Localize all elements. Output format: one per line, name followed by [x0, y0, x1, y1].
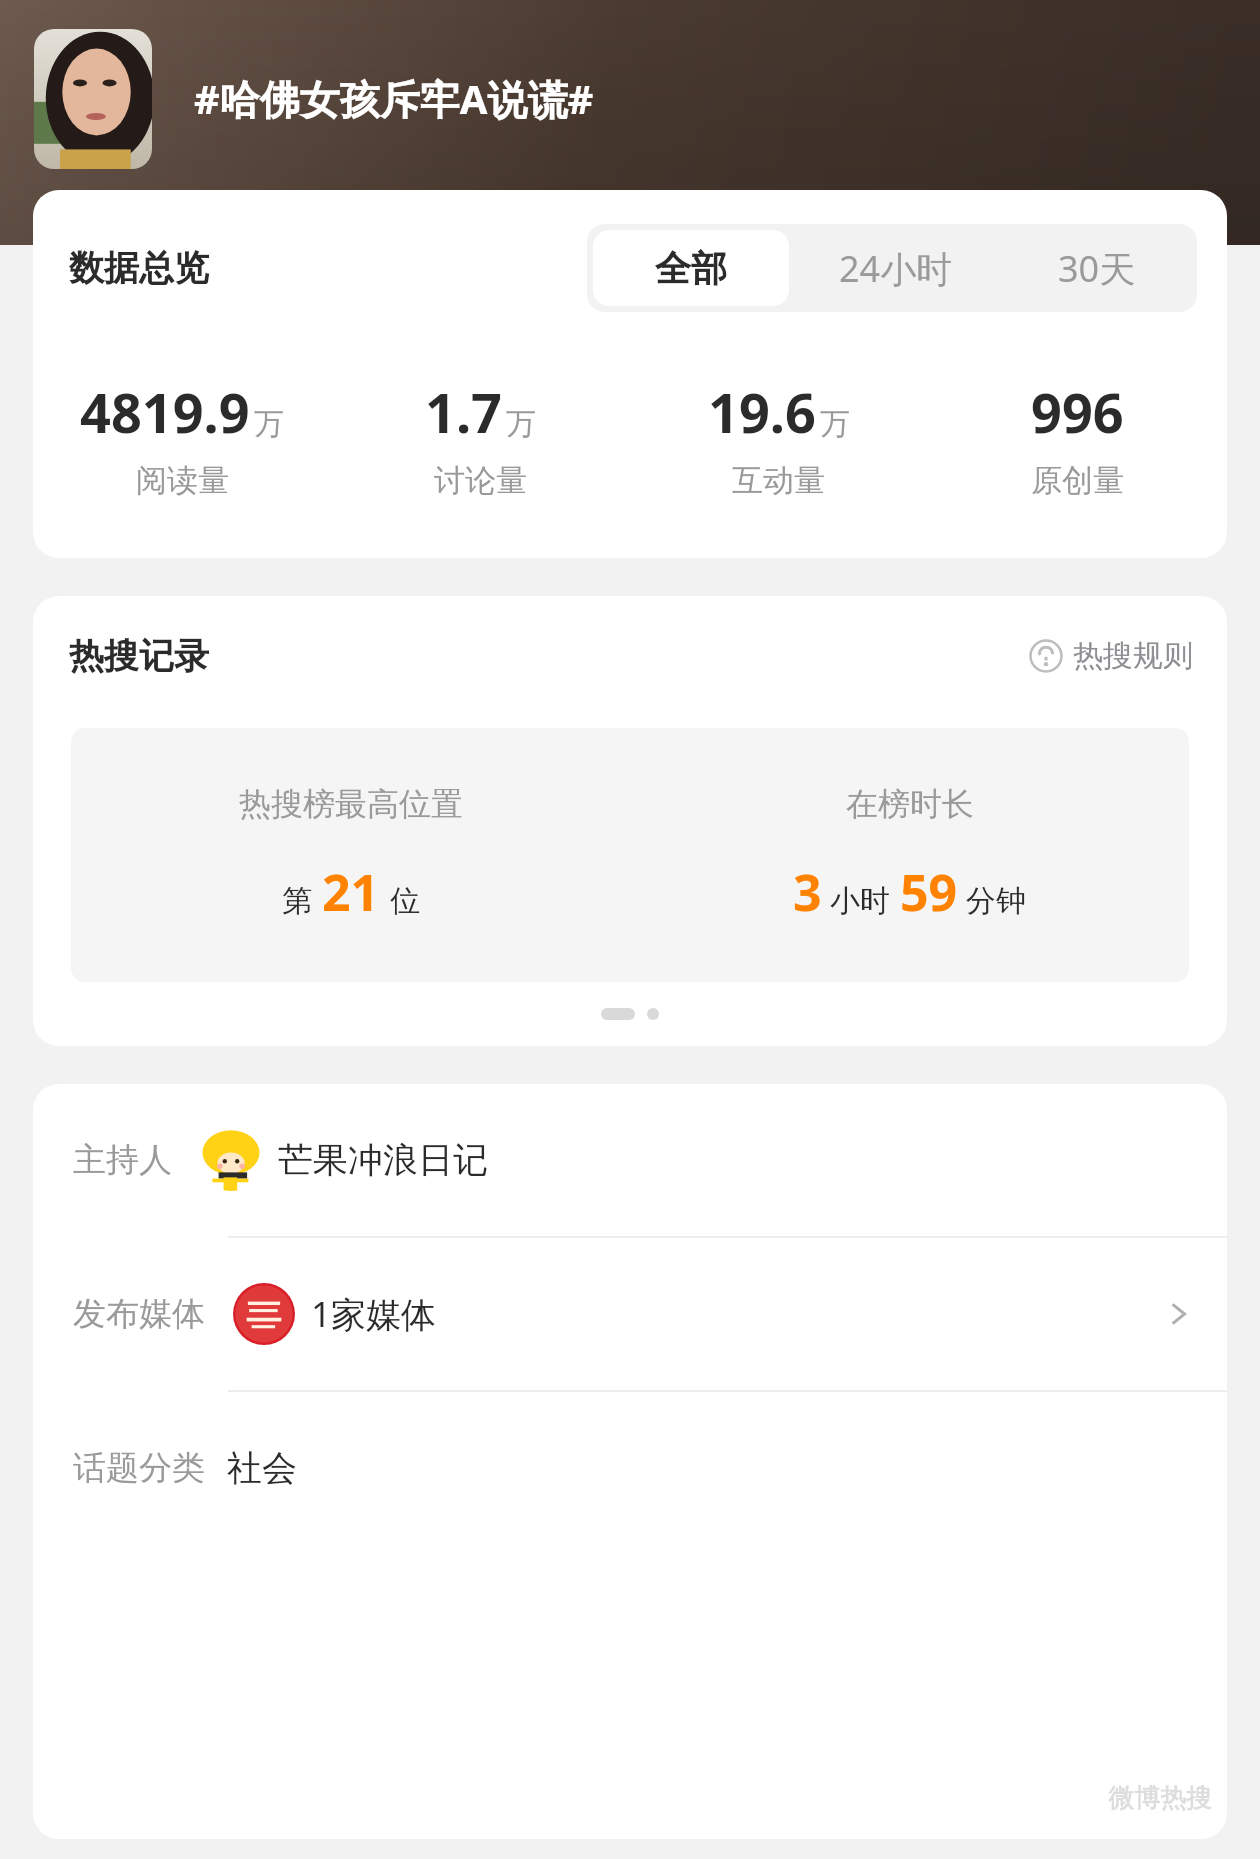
staticText: 万	[506, 405, 536, 443]
staticText: 万	[820, 405, 850, 443]
staticText: 微博热搜	[1108, 1782, 1212, 1815]
staticText: 芒果冲浪日记	[278, 1138, 488, 1182]
staticText: 热搜记录	[69, 634, 209, 678]
staticText: 4819.9	[80, 375, 250, 449]
button[interactable]: 4819.9	[33, 375, 331, 500]
staticText: 小时	[830, 882, 890, 920]
button[interactable]: 19.6	[629, 375, 928, 500]
staticText: 24小时	[839, 244, 953, 293]
staticText: 阅读量	[136, 461, 229, 500]
button[interactable]: 全部	[593, 230, 789, 306]
staticText: 全部	[655, 246, 727, 291]
staticText: 主持人	[73, 1139, 172, 1181]
staticText: 万	[254, 405, 284, 443]
staticText: 3	[793, 858, 822, 926]
staticText: 第	[282, 882, 312, 920]
button[interactable]: 1.7	[331, 375, 629, 500]
button[interactable]: 30天	[996, 224, 1197, 312]
other: More	[1163, 1299, 1193, 1329]
staticText: 讨论量	[434, 461, 527, 500]
staticText: 互动量	[732, 461, 825, 500]
staticText: 59	[900, 858, 958, 926]
staticText: 原创量	[1031, 461, 1124, 500]
staticText: #哈佛女孩斥牢A说谎#	[194, 71, 594, 126]
staticText: 30天	[1058, 244, 1136, 293]
button[interactable]: 热搜规则	[1029, 637, 1193, 675]
staticText: 热搜榜最高位置	[239, 784, 463, 824]
staticText: 话题分类	[73, 1447, 205, 1489]
staticText: 位	[390, 882, 420, 920]
button[interactable]: 发布媒体	[33, 1238, 1227, 1392]
button[interactable]: 话题分类	[33, 1392, 1227, 1544]
staticText: 1.7	[425, 375, 502, 449]
staticText: 发布媒体	[73, 1293, 205, 1335]
staticText: 1家媒体	[311, 1290, 437, 1338]
button[interactable]: Topic image	[34, 29, 152, 169]
button[interactable]: 主持人	[33, 1084, 1227, 1238]
staticText: 社会	[227, 1446, 297, 1490]
staticText: 19.6	[708, 375, 816, 449]
staticText: 996	[1031, 375, 1124, 449]
staticText: 21	[322, 858, 380, 926]
staticText: 数据总览	[69, 246, 209, 290]
staticText: 分钟	[966, 882, 1026, 920]
button[interactable]: 24小时	[795, 224, 996, 312]
staticText: 在榜时长	[846, 784, 974, 824]
staticText: 热搜规则	[1073, 637, 1193, 675]
button[interactable]: 996	[928, 375, 1227, 500]
